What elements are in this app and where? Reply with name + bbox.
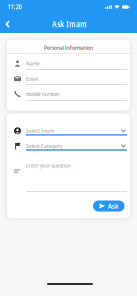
staticText: Ask — [108, 201, 119, 211]
staticText: Enter your question — [26, 162, 71, 169]
button[interactable]: Select Imam — [7, 124, 130, 138]
staticText: 11:20 — [7, 2, 21, 11]
staticText: Email — [26, 75, 38, 82]
staticText: Name — [26, 60, 40, 67]
button[interactable]: Ask — [93, 200, 124, 211]
staticText: Select Imam — [26, 127, 54, 134]
button[interactable]: Select Category — [7, 139, 130, 153]
staticText: Select Category — [26, 142, 62, 150]
staticText: mobile number — [26, 90, 60, 98]
staticText: Personal Information — [44, 44, 93, 51]
button[interactable]: Back — [6, 21, 10, 28]
staticText: Ask Imam — [52, 18, 87, 30]
